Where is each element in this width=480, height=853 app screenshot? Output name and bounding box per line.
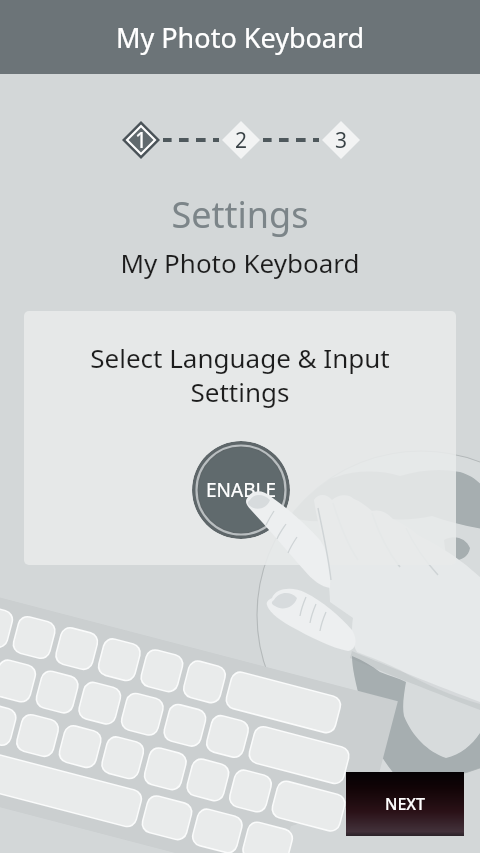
staticText: Select Language & Input Settings <box>24 340 456 410</box>
staticText: ENABLE <box>206 477 277 503</box>
staticText: 3 <box>335 126 348 155</box>
staticText: 1 <box>135 126 148 155</box>
staticText: My Photo Keyboard <box>116 19 365 56</box>
staticText: My Photo Keyboard <box>0 245 480 280</box>
button[interactable]: 3 <box>319 118 363 162</box>
staticText: Settings <box>0 190 480 239</box>
button[interactable]: 1 <box>119 118 163 162</box>
button[interactable]: 2 <box>219 118 263 162</box>
staticText: 2 <box>235 126 248 155</box>
staticText: NEXT <box>385 793 426 815</box>
button[interactable]: ENABLE <box>192 441 290 539</box>
button[interactable]: NEXT <box>346 772 464 836</box>
